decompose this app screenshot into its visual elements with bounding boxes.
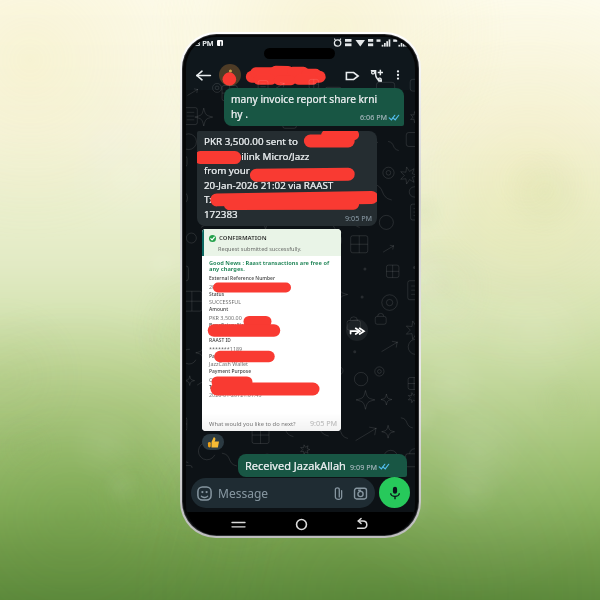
staticText: PKR 3,500.00 sent to [204,135,298,148]
staticText: OR Mobilink Micro/Jazz [204,150,310,163]
staticText: Message [218,485,269,501]
staticText: 2026012011223344 [209,283,259,290]
staticText: 9:05 PM [345,213,372,223]
staticText: SUCCESSFUL [209,298,242,305]
button[interactable]: Back [353,514,373,534]
button[interactable]: Voice message [379,477,410,508]
staticText: Others [209,376,227,383]
staticText: External Reference Number [209,275,276,282]
staticText: PKR 3,500.00 [209,314,242,321]
staticText: Tx [204,193,215,206]
staticText: 9:09 PM [350,462,377,472]
staticText: Pay Via [209,353,227,360]
staticText: many invoice report share krni [231,92,378,106]
staticText: 2026-01-20T21:01:45 [209,391,262,398]
staticText: RAAST ID [209,337,231,344]
button[interactable]: Back [193,65,213,85]
staticText: Good News : Raast transactions are free … [209,259,330,267]
staticText: hy . [231,107,248,121]
staticText: JazzCash Wallet [209,360,249,367]
button[interactable]: Received JazakAllah [238,454,407,477]
button[interactable]: Forward [346,319,368,341]
staticText: Received JazakAllah [245,458,346,473]
staticText: Payment Purpose [209,368,252,375]
button[interactable]: Home [291,514,311,534]
staticText: Muhammad Ali [209,329,248,336]
staticText: 6:06 PM [360,112,387,122]
button[interactable]: PKR 3,500.00 sent to [197,131,377,226]
button[interactable]: Call [366,65,387,86]
staticText: CONFIRMATION [219,234,267,242]
staticText: from your [204,164,250,177]
button[interactable]: CONFIRMATION [202,229,341,431]
button[interactable]: many invoice report share krni [224,88,404,126]
staticText: Beneficiary Name [209,322,252,329]
staticText: 9:05 PM [310,418,337,428]
staticText: any charges. [209,265,245,273]
button[interactable]: Message [191,478,375,508]
staticText: 172383 [204,208,238,221]
staticText: *******1189 [209,345,243,352]
button[interactable]: Thumbs up reaction [202,434,224,450]
staticText: 20-Jan-2026 21:02 via RAAST [204,179,334,192]
staticText: Transaction Date & Time [209,384,268,391]
staticText: Request submitted successfully. [218,245,302,253]
staticText: .3 PM [194,38,214,48]
staticText: What would you like to do next? [209,420,296,428]
button[interactable] [219,64,341,86]
staticText: Status [209,291,225,298]
button[interactable]: Recent apps [228,514,248,534]
button[interactable]: Label [341,65,362,86]
button[interactable]: More options [389,66,407,84]
staticText: Amount [209,306,229,313]
